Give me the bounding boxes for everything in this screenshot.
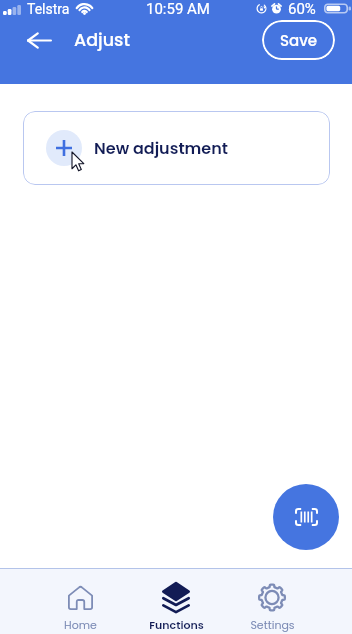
button[interactable]: Functions [128, 569, 224, 634]
staticText: New adjustment [94, 137, 229, 159]
button[interactable]: New adjustment [23, 111, 330, 185]
staticText: Settings [250, 617, 295, 632]
button[interactable]: Back [21, 24, 58, 56]
button[interactable]: Scan barcode [273, 484, 339, 550]
staticText: 10:59 AM [146, 0, 210, 17]
button[interactable]: Save [262, 20, 335, 60]
button[interactable]: Settings [224, 569, 320, 634]
staticText: Home [64, 617, 97, 632]
staticText: Functions [149, 617, 204, 632]
staticText: Adjust [74, 28, 130, 53]
staticText: 60% [288, 0, 316, 17]
staticText: Telstra [27, 1, 70, 17]
staticText: Save [280, 30, 318, 51]
button[interactable]: Home [32, 569, 128, 634]
